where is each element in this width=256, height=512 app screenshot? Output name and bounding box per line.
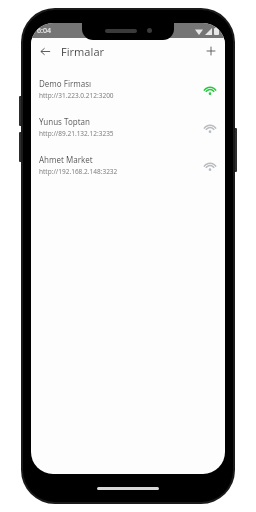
staticText: Firmalar bbox=[61, 44, 105, 59]
button[interactable]: Add bbox=[201, 41, 221, 61]
staticText: http://192.168.2.148:3232 bbox=[39, 167, 118, 176]
staticText: Yunus Toptan bbox=[39, 116, 90, 127]
staticText: 6:04 bbox=[37, 26, 51, 36]
button[interactable]: Back bbox=[35, 41, 55, 61]
staticText: http://89.21.132.12:3235 bbox=[39, 129, 114, 138]
staticText: Demo Firması bbox=[39, 78, 92, 89]
button[interactable]: Ahmet Market bbox=[31, 146, 225, 184]
button[interactable]: Demo Firması bbox=[31, 70, 225, 108]
staticText: Ahmet Market bbox=[39, 154, 93, 165]
staticText: http://31.223.0.212:3200 bbox=[39, 91, 114, 100]
button[interactable]: Yunus Toptan bbox=[31, 108, 225, 146]
